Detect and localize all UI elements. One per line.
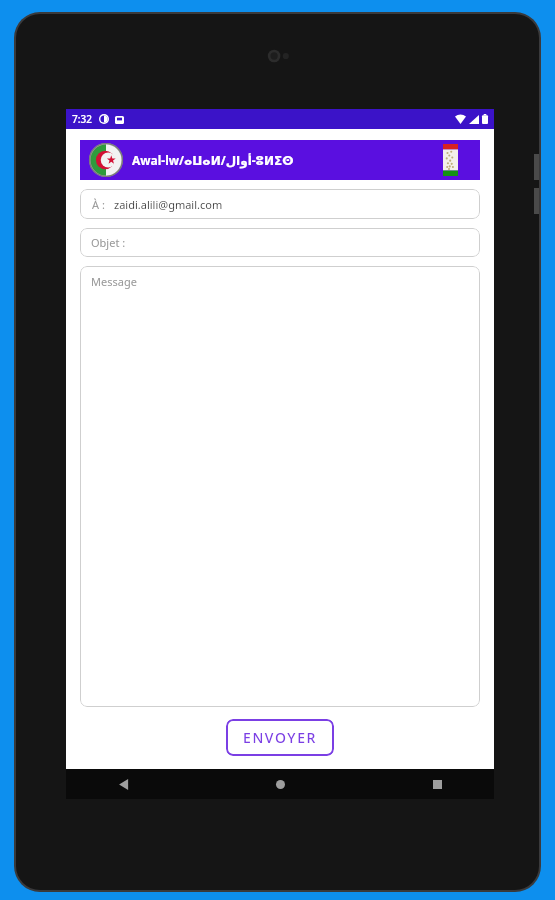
staticText: Objet :	[91, 235, 126, 250]
button[interactable]: À :	[80, 189, 480, 219]
button[interactable]: Objet :	[80, 228, 480, 257]
button[interactable]: ENVOYER	[226, 719, 334, 756]
button[interactable]: Recent apps	[420, 769, 454, 799]
button[interactable]: Home	[263, 769, 297, 799]
button[interactable]: Algeria logo	[80, 140, 480, 180]
button[interactable]: Message	[80, 266, 480, 707]
staticText: ENVOYER	[243, 728, 317, 747]
staticText: Message	[91, 274, 137, 289]
staticText: 7:32	[72, 112, 92, 126]
button[interactable]: Back	[106, 769, 140, 799]
other: Algeria logo	[89, 143, 123, 177]
staticText: À :	[92, 197, 105, 212]
staticText: Awal-lw/ⴰⵡⴰⵍ/أوال-ⵓⵍⵉⵙ	[132, 152, 294, 168]
staticText: zaidi.alili@gmail.com	[114, 197, 223, 212]
other: Flag icon	[443, 144, 458, 176]
